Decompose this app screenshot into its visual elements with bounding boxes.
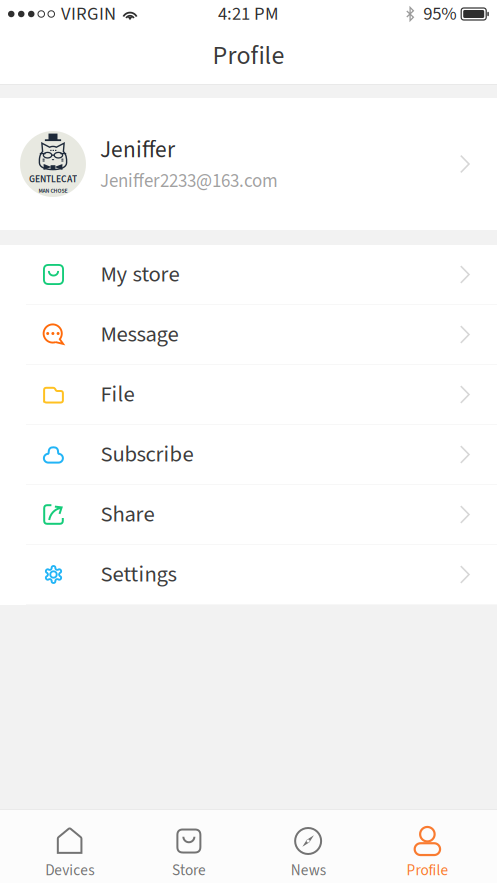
button[interactable]: Profile: [368, 809, 487, 883]
staticText: Store: [172, 859, 206, 881]
staticText: Share: [100, 498, 154, 531]
button[interactable]: News: [248, 809, 368, 883]
button[interactable]: File: [0, 365, 497, 425]
button[interactable]: My store: [0, 245, 497, 305]
staticText: Message: [100, 318, 178, 351]
staticText: File: [100, 378, 134, 411]
staticText: VIRGIN: [61, 1, 116, 27]
staticText: Settings: [100, 558, 176, 591]
button[interactable]: GENTLECAT: [0, 98, 497, 230]
staticText: My store: [100, 258, 179, 291]
staticText: MAN CHOSE: [38, 187, 67, 195]
staticText: Profile: [406, 859, 448, 881]
staticText: GENTLECAT: [29, 172, 77, 186]
staticText: Subscribe: [100, 438, 193, 471]
staticText: Profile: [212, 37, 284, 74]
staticText: News: [291, 859, 326, 881]
button[interactable]: Store: [129, 809, 248, 883]
staticText: 4:21 PM: [218, 1, 279, 27]
button[interactable]: Message: [0, 305, 497, 365]
staticText: Jeniffer: [100, 133, 175, 167]
button[interactable]: Devices: [10, 809, 129, 883]
button[interactable]: Settings: [0, 545, 497, 605]
staticText: Jeniffer2233@163.com: [100, 168, 278, 195]
button[interactable]: Subscribe: [0, 425, 497, 485]
button[interactable]: Share: [0, 485, 497, 545]
staticText: 95%: [423, 1, 456, 27]
staticText: Devices: [45, 859, 94, 881]
